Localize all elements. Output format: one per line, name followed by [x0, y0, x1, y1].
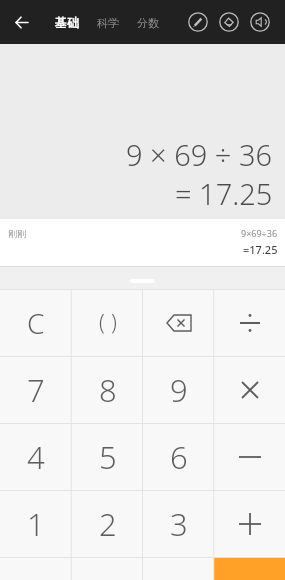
- button[interactable]: [214, 557, 285, 580]
- button[interactable]: 1: [0, 490, 72, 557]
- button[interactable]: [143, 289, 214, 356]
- staticText: (: [99, 308, 105, 337]
- button[interactable]: 8: [72, 356, 143, 423]
- button[interactable]: 3: [143, 490, 214, 557]
- staticText: 8: [99, 369, 117, 411]
- staticText: 刚刚: [8, 228, 26, 239]
- button[interactable]: [72, 557, 143, 580]
- button[interactable]: [250, 12, 270, 32]
- button[interactable]: [214, 289, 285, 356]
- staticText: 6: [170, 436, 188, 478]
- staticText: 9 × 69 ÷ 36: [126, 135, 273, 174]
- staticText: 科学: [97, 16, 119, 30]
- staticText: 5: [99, 436, 117, 478]
- button[interactable]: [8, 9, 34, 35]
- staticText: 1: [27, 503, 45, 545]
- button[interactable]: [0, 557, 72, 580]
- staticText: C: [27, 304, 45, 342]
- button[interactable]: 7: [0, 356, 72, 423]
- button[interactable]: [214, 423, 285, 490]
- button[interactable]: C: [0, 289, 72, 356]
- button[interactable]: 4: [0, 423, 72, 490]
- button[interactable]: 基础: [46, 7, 88, 38]
- button[interactable]: [214, 356, 285, 423]
- button[interactable]: [188, 12, 208, 32]
- button[interactable]: 科学: [88, 8, 128, 38]
- staticText: 3: [170, 503, 188, 545]
- button[interactable]: 分数: [128, 8, 168, 38]
- staticText: 4: [27, 436, 45, 478]
- staticText: 基础: [55, 15, 79, 30]
- staticText: 9: [170, 369, 188, 411]
- staticText: 7: [27, 369, 45, 411]
- button[interactable]: [143, 557, 214, 580]
- button[interactable]: (: [72, 289, 143, 356]
- button[interactable]: 9: [143, 356, 214, 423]
- staticText: = 17.25: [175, 174, 273, 213]
- button[interactable]: [214, 490, 285, 557]
- button[interactable]: 刚刚: [0, 219, 285, 266]
- button[interactable]: 2: [72, 490, 143, 557]
- button[interactable]: 5: [72, 423, 143, 490]
- staticText: 9×69÷36: [241, 227, 278, 239]
- staticText: 分数: [137, 16, 159, 30]
- staticText: ): [111, 308, 117, 337]
- staticText: =17.25: [243, 242, 278, 257]
- button[interactable]: 6: [143, 423, 214, 490]
- staticText: 2: [99, 503, 117, 545]
- button[interactable]: [219, 12, 239, 32]
